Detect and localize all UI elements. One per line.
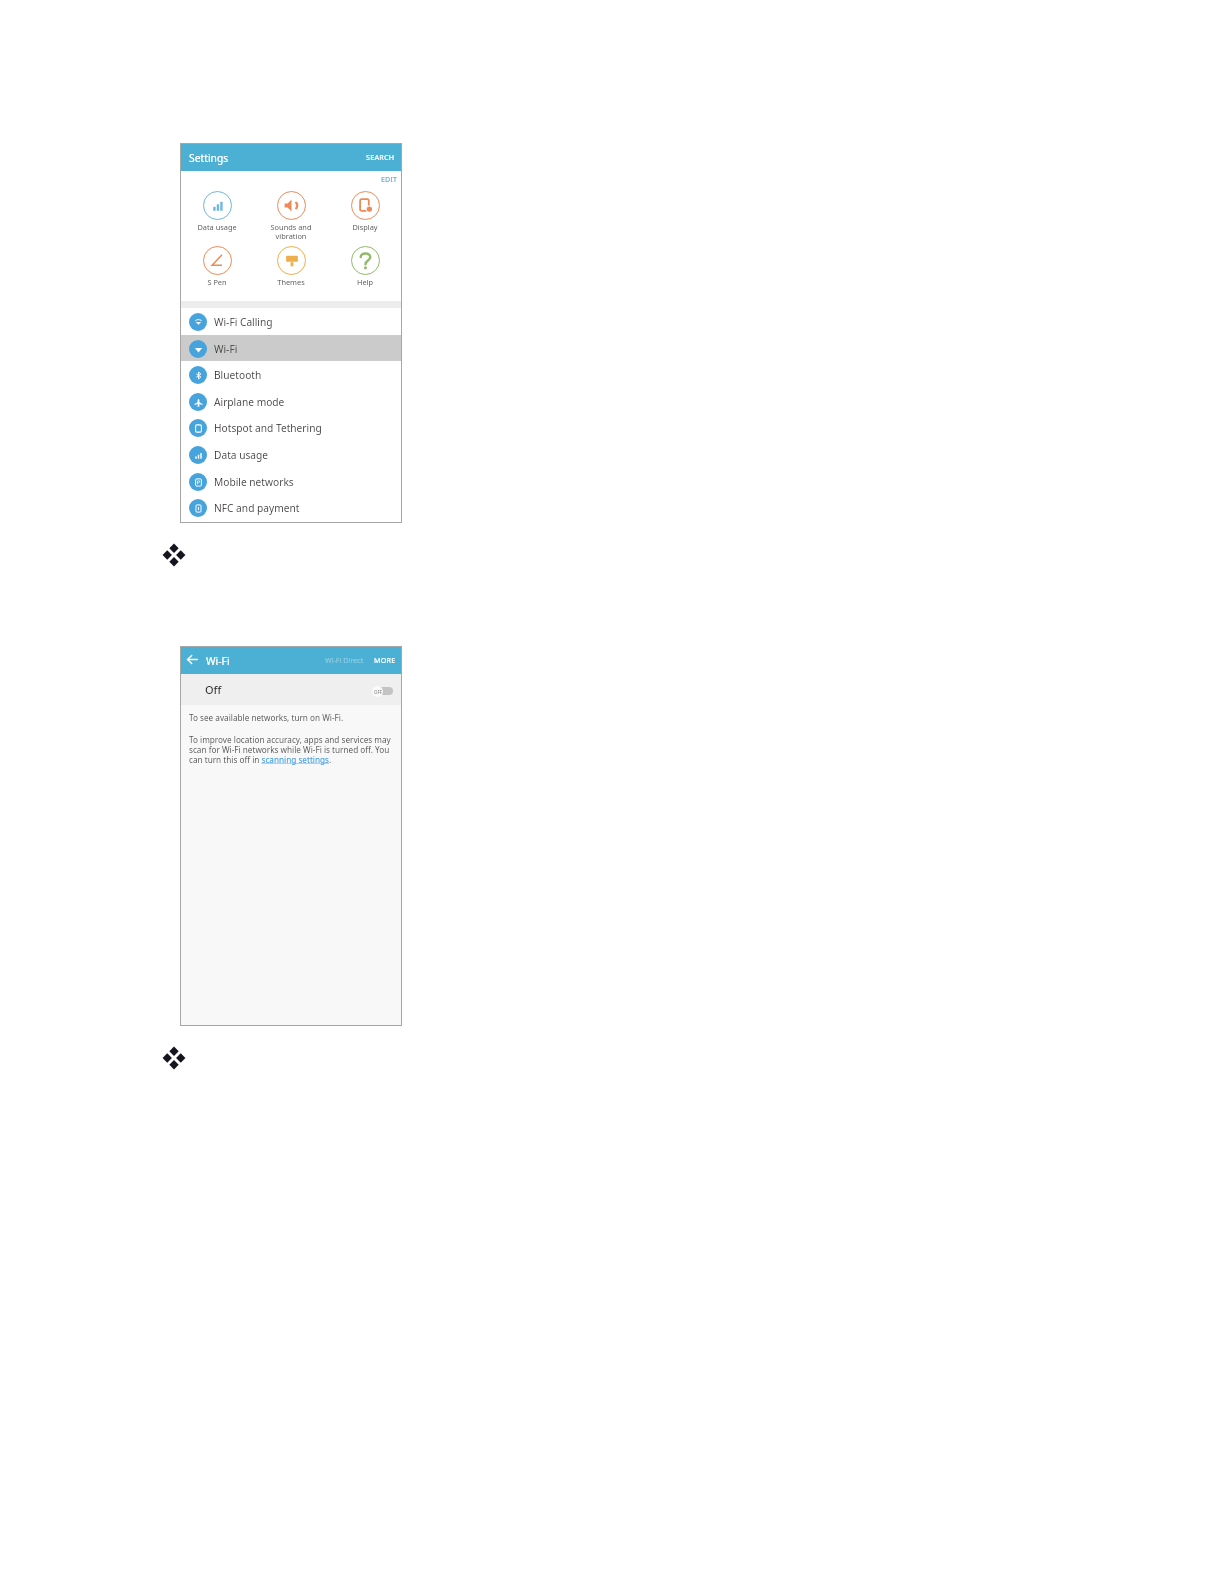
button[interactable]: Wi-Fi Direct (321, 651, 368, 669)
staticText: Wi-Fi Calling (214, 315, 273, 329)
button[interactable]: Sounds and vibration (254, 189, 328, 239)
button[interactable]: Themes (254, 244, 328, 294)
staticText: OFF (374, 689, 382, 695)
staticText: NFC and payment (214, 501, 300, 515)
staticText: Off (205, 682, 222, 697)
button[interactable]: MORE (368, 651, 402, 669)
button[interactable]: Off (180, 674, 402, 705)
staticText: Help (328, 277, 402, 287)
staticText: Settings (189, 151, 229, 165)
button[interactable]: Mobile networks (180, 468, 402, 495)
button[interactable]: SEARCH (359, 148, 402, 166)
button[interactable]: Hotspot and Tethering (180, 414, 402, 441)
staticText: Mobile networks (214, 475, 294, 489)
staticText: Hotspot and Tethering (214, 421, 322, 435)
staticText: Wi-Fi (214, 342, 238, 356)
staticText: S Pen (180, 277, 254, 287)
button[interactable]: Data usage (180, 441, 402, 468)
button[interactable]: EDIT (377, 171, 402, 189)
staticText: Sounds and vibration (254, 222, 328, 241)
staticText: Data usage (180, 222, 254, 232)
staticText: Bluetooth (214, 368, 262, 382)
button[interactable]: Back (186, 653, 199, 666)
staticText: Data usage (214, 448, 269, 462)
staticText: To improve location accuracy, apps and s… (189, 734, 393, 765)
button[interactable]: Help (328, 244, 402, 294)
button[interactable]: NFC and payment (180, 494, 402, 521)
button[interactable]: Bluetooth (180, 361, 402, 388)
staticText: To see available networks, turn on Wi-Fi… (189, 712, 344, 723)
button[interactable]: Airplane mode (180, 388, 402, 415)
button[interactable]: Display (328, 189, 402, 239)
staticText: Display (328, 222, 402, 232)
button[interactable]: Wi-Fi Calling (180, 308, 402, 335)
staticText: Themes (254, 277, 328, 287)
button[interactable]: S Pen (180, 244, 254, 294)
staticText: Wi-Fi Direct (325, 655, 364, 665)
button[interactable]: Data usage (180, 189, 254, 239)
staticText: MORE (374, 655, 396, 665)
staticText: Wi-Fi (206, 654, 230, 668)
staticText: EDIT (381, 175, 398, 185)
staticText: SEARCH (366, 152, 395, 162)
staticText: Airplane mode (214, 395, 285, 409)
button[interactable]: Wi-Fi (180, 335, 402, 362)
